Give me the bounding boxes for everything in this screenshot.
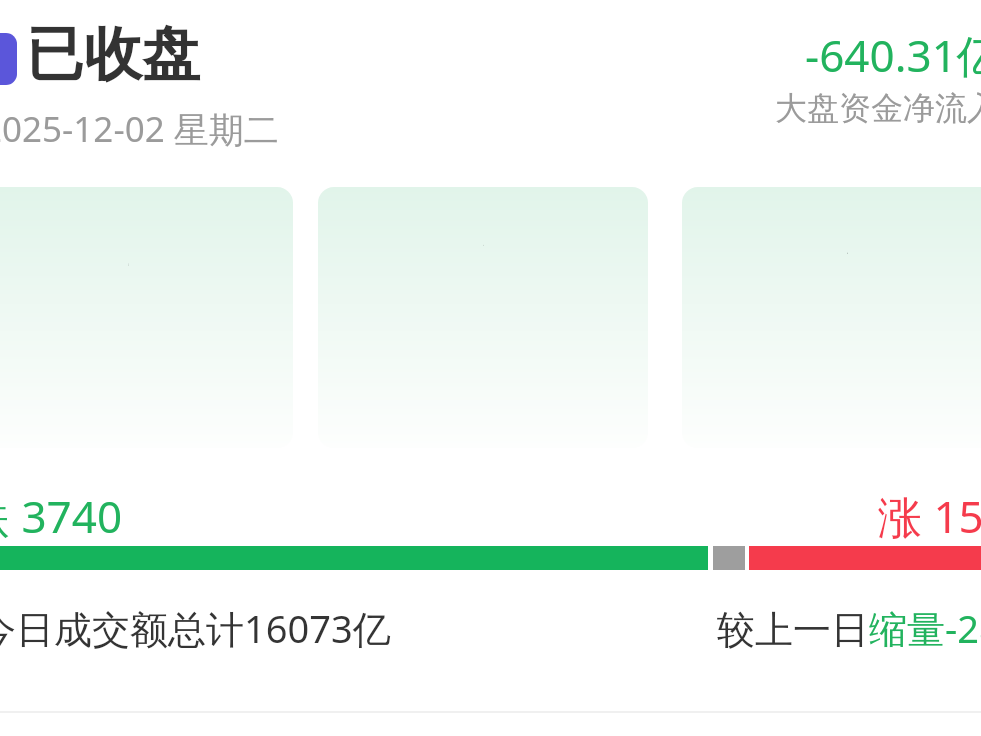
staticText: 今日成交额总计16073亿 xyxy=(0,602,391,654)
staticText: 2025-12-02 星期二 xyxy=(0,105,279,153)
staticText: 较上一日缩量-282 xyxy=(717,602,981,654)
button[interactable] xyxy=(0,546,981,570)
staticText: 已收盘 xyxy=(26,18,200,91)
staticText: 涨 154 xyxy=(878,486,981,546)
button[interactable]: 创业板指 xyxy=(682,187,981,448)
staticText: 大盘资金净流入 xyxy=(775,88,981,128)
button[interactable]: App badge xyxy=(0,33,17,85)
button[interactable]: 深证成指 xyxy=(318,187,648,448)
staticText: 上证指数 xyxy=(128,230,129,274)
staticText: 深证成指 xyxy=(483,230,484,274)
staticText: -640.31亿 xyxy=(805,25,981,85)
staticText: 跌 3740 xyxy=(0,486,123,546)
button[interactable]: 上证指数 xyxy=(0,187,293,448)
staticText: 创业板指 xyxy=(847,230,848,274)
